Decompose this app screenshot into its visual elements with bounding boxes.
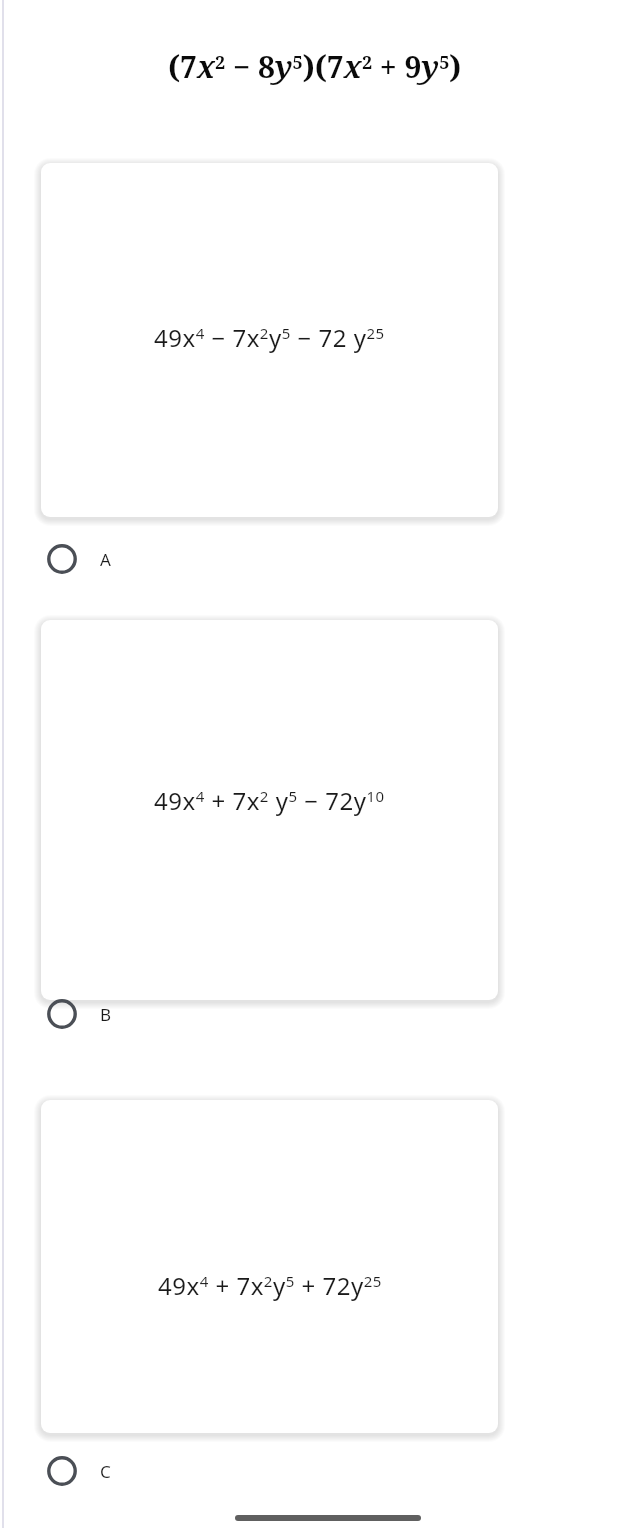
staticText: B — [100, 1003, 112, 1026]
staticText: C — [100, 1460, 111, 1483]
other: Option C — [47, 1456, 77, 1486]
button[interactable]: Option B — [14, 990, 314, 1038]
staticText: 49x4 + 7x2 y5 − 72y10 — [154, 784, 385, 817]
staticText: 49x4 + 7x2y5 + 72y25 — [158, 1269, 382, 1302]
staticText: (7x2 − 8y5)(7x2 + 9y5) — [168, 46, 462, 87]
other: Option A — [47, 544, 77, 574]
staticText: A — [100, 548, 111, 571]
other: Option B — [47, 999, 77, 1029]
button[interactable] — [41, 620, 498, 1000]
staticText: 49x4 − 7x2y5 − 72 y25 — [154, 321, 385, 354]
button[interactable]: Option C — [14, 1447, 314, 1495]
button[interactable] — [41, 1100, 498, 1433]
button[interactable]: Option A — [14, 535, 314, 583]
button[interactable] — [41, 163, 498, 517]
